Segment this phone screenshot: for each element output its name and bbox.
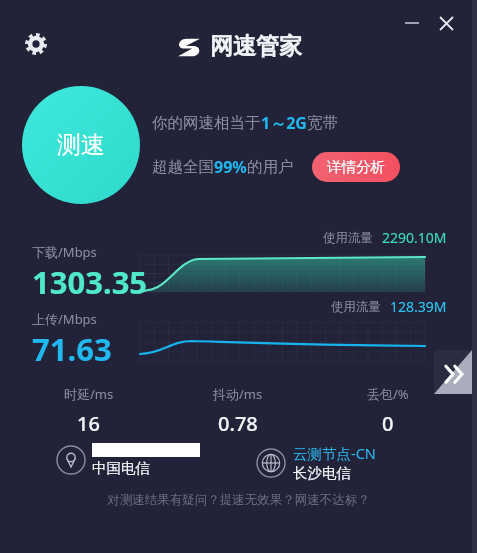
staticText: 详情分析 [327, 158, 385, 176]
button[interactable]: Close [429, 6, 463, 40]
staticText: 0 [382, 410, 394, 437]
staticText: 使用流量 [323, 230, 373, 246]
button[interactable]: 云测节点-CN [256, 443, 457, 482]
staticText: 99% [214, 156, 247, 178]
staticText: 下载/Mbps [32, 243, 97, 261]
staticText: 长沙电信 [293, 464, 351, 482]
staticText: 丢包/% [367, 385, 409, 403]
staticText: 宽带 [307, 113, 338, 133]
staticText: 上传/Mbps [32, 310, 97, 328]
staticText: 2290.10M [382, 228, 447, 247]
staticText: 云测节点-CN [293, 443, 376, 463]
button[interactable]: 详情分析 [312, 152, 400, 182]
staticText: 的用户 [247, 157, 294, 177]
button[interactable]: 测速 [22, 86, 140, 204]
staticText: 1～2G [261, 112, 307, 134]
button[interactable]: Minimize [395, 6, 429, 40]
staticText: 1303.35 [32, 261, 148, 303]
button[interactable]: 中国电信 [56, 443, 256, 477]
staticText: 使用流量 [331, 299, 381, 315]
button[interactable]: Expand panel [434, 350, 472, 394]
staticText: 测速 [57, 130, 105, 160]
staticText: 71.63 [32, 328, 112, 370]
staticText: 16 [77, 410, 100, 437]
staticText: 超越全国 [152, 157, 214, 177]
staticText: 你的网速相当于 [152, 113, 261, 133]
staticText: 抖动/ms [213, 385, 263, 403]
staticText: 网速管家 [210, 32, 302, 61]
staticText: 时延/ms [64, 385, 114, 403]
button[interactable]: Settings [18, 26, 54, 62]
staticText: 0.78 [218, 410, 258, 437]
staticText: 128.39M [390, 297, 447, 316]
staticText: 中国电信 [92, 459, 150, 477]
staticText: 对测速结果有疑问？提速无效果？网速不达标？ [0, 492, 477, 508]
